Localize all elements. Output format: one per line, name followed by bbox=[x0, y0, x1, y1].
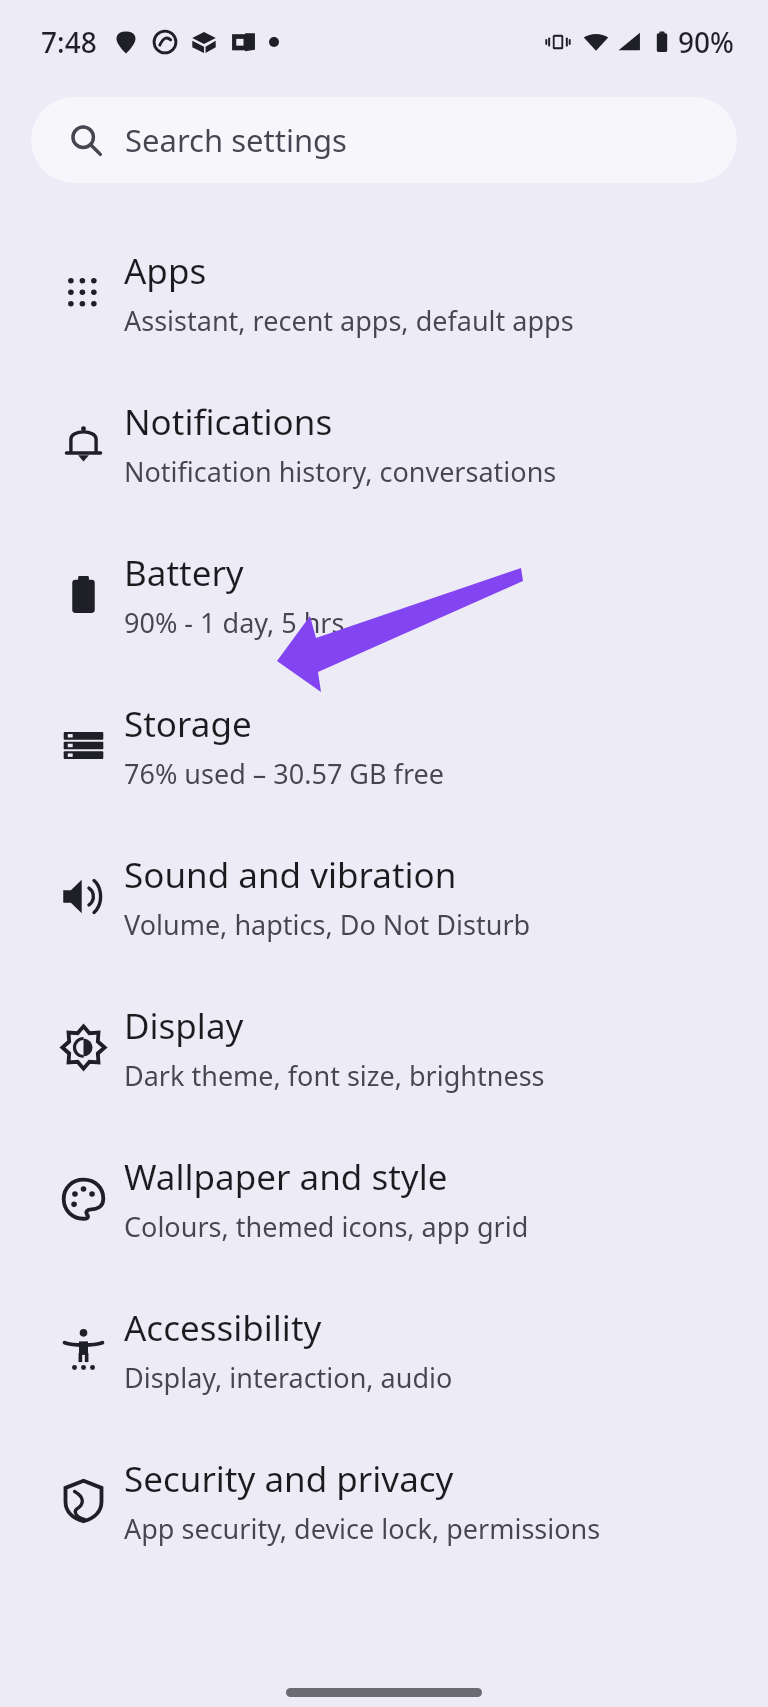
staticText: Display bbox=[124, 1002, 244, 1050]
button[interactable]: Display bbox=[0, 972, 768, 1123]
staticText: App security, device lock, permissions bbox=[124, 1510, 601, 1547]
button[interactable]: Wallpaper and style bbox=[0, 1123, 768, 1274]
staticText: Security and privacy bbox=[124, 1455, 454, 1503]
staticText: Storage bbox=[124, 700, 252, 748]
staticText: Accessibility bbox=[124, 1304, 322, 1352]
button[interactable]: Accessibility bbox=[0, 1274, 768, 1425]
staticText: 76% used – 30.57 GB free bbox=[124, 755, 444, 792]
button[interactable]: Security and privacy bbox=[0, 1425, 768, 1576]
staticText: 90% bbox=[678, 23, 734, 61]
staticText: Assistant, recent apps, default apps bbox=[124, 302, 574, 339]
button[interactable]: Notifications bbox=[0, 368, 768, 519]
button[interactable]: Search settings bbox=[31, 97, 737, 183]
staticText: 90% - 1 day, 5 hrs bbox=[124, 604, 345, 641]
staticText: Apps bbox=[124, 247, 207, 295]
staticText: Wallpaper and style bbox=[124, 1153, 448, 1201]
button[interactable]: Apps bbox=[0, 217, 768, 368]
staticText: Dark theme, font size, brightness bbox=[124, 1057, 545, 1094]
button[interactable]: Sound and vibration bbox=[0, 821, 768, 972]
staticText: Volume, haptics, Do Not Disturb bbox=[124, 906, 531, 943]
button[interactable]: Battery bbox=[0, 519, 768, 670]
staticText: Notification history, conversations bbox=[124, 453, 557, 490]
staticText: Battery bbox=[124, 549, 244, 597]
staticText: Sound and vibration bbox=[124, 851, 457, 899]
button[interactable]: Storage bbox=[0, 670, 768, 821]
staticText: Search settings bbox=[125, 119, 347, 161]
staticText: Notifications bbox=[124, 398, 333, 446]
staticText: Colours, themed icons, app grid bbox=[124, 1208, 529, 1245]
staticText: Display, interaction, audio bbox=[124, 1359, 453, 1396]
staticText: 7:48 bbox=[41, 23, 97, 61]
